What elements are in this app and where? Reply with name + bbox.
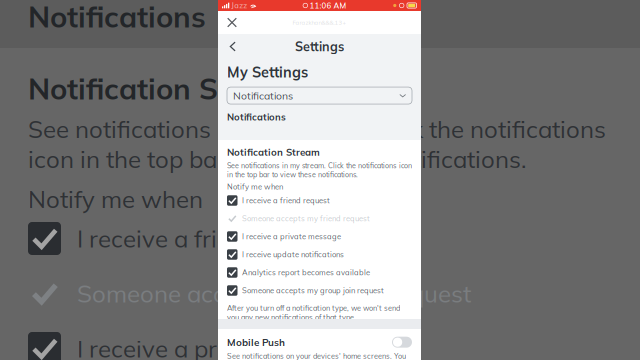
staticText: I receive a friend request	[77, 223, 347, 253]
staticText: Notification Stream	[28, 70, 300, 107]
staticText: See notifications in my stream. Click th…	[28, 114, 606, 144]
staticText: Notify me when	[227, 182, 283, 191]
button[interactable]: I receive update notifications	[227, 245, 412, 263]
staticText: Someone accepts my group join request	[242, 286, 384, 295]
staticText: My Settings	[227, 63, 308, 81]
staticText: Analytics report becomes available	[242, 268, 370, 277]
staticText: Someone accepts my friend request	[77, 278, 471, 308]
staticText: Farazkhan&&&.13+	[292, 19, 346, 26]
button[interactable]: Mobile Push	[392, 337, 412, 348]
button[interactable]: Someone accepts my friend request	[227, 209, 412, 227]
staticText: Jazz	[231, 1, 247, 10]
staticText: I receive a private message	[77, 333, 376, 360]
staticText: Notify me when	[28, 184, 203, 214]
staticText: See notifications on your devices' home …	[227, 351, 406, 360]
staticText: After you turn off a notification type, …	[227, 303, 400, 322]
staticText: I receive a private message	[242, 232, 341, 241]
staticText: Settings	[295, 39, 344, 54]
staticText: Notifications	[233, 89, 293, 102]
staticText: Mobile Push	[227, 336, 285, 348]
button[interactable]: Someone accepts my group join request	[227, 281, 412, 299]
button[interactable]: I receive a friend request	[227, 191, 412, 209]
staticText: Notification Stream	[227, 146, 320, 158]
staticText: Someone accepts my friend request	[242, 214, 370, 223]
staticText: icon in the top bar to view these notifi…	[28, 144, 526, 174]
button[interactable]: Back	[225, 34, 241, 59]
staticText: Notifications	[28, 0, 206, 35]
staticText: Notifications	[227, 111, 286, 123]
staticText: I receive update notifications	[242, 250, 344, 259]
button[interactable]: Analytics report becomes available	[227, 263, 412, 281]
button[interactable]: Close	[223, 11, 241, 33]
staticText: I receive a friend request	[242, 196, 330, 205]
staticText: 11:06 AM	[310, 1, 347, 10]
button[interactable]: I receive a private message	[227, 227, 412, 245]
staticText: See notifications in my stream. Click th…	[227, 161, 412, 179]
button[interactable]: Notifications	[227, 87, 412, 104]
